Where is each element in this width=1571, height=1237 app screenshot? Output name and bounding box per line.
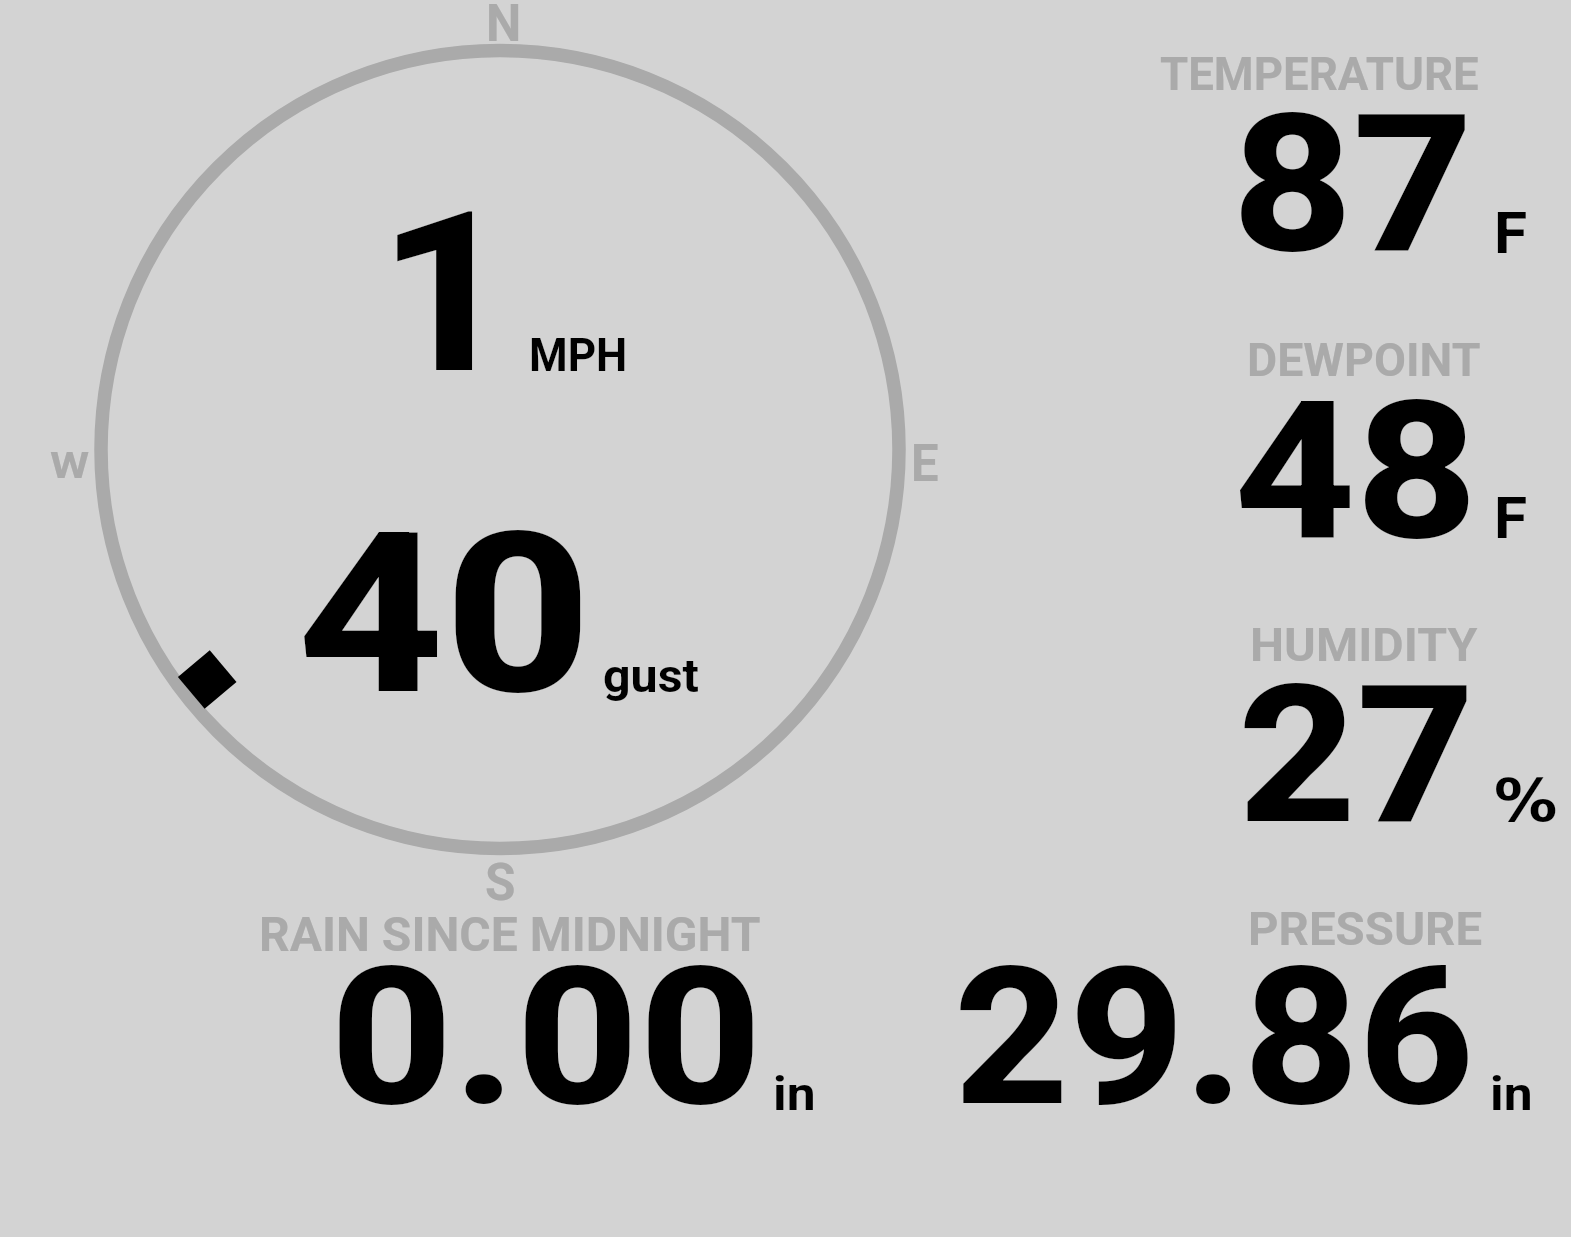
staticText: DEWPOINT [1247, 333, 1481, 387]
button[interactable]: Rain since midnight 0.00 inches [240, 900, 840, 1130]
staticText: HUMIDITY [1250, 618, 1478, 672]
staticText: % [1494, 767, 1558, 835]
staticText: 1 [378, 164, 515, 424]
staticText: F [1494, 199, 1527, 267]
staticText: N [486, 0, 521, 54]
button[interactable]: Dewpoint 48 degrees Fahrenheit [1140, 325, 1540, 555]
staticText: RAIN SINCE MIDNIGHT [259, 906, 761, 962]
staticText: 27 [1238, 643, 1475, 868]
button[interactable]: Wind direction compass, 1 MPH, gust 40 [101, 51, 899, 849]
staticText: F [1494, 484, 1527, 552]
staticText: in [1490, 1067, 1533, 1121]
staticText: in [773, 1067, 816, 1121]
button[interactable]: Pressure 29.86 inches [930, 900, 1490, 1130]
staticText: E [911, 434, 939, 494]
staticText: TEMPERATURE [1160, 47, 1479, 101]
staticText: 0.00 [330, 925, 763, 1150]
staticText: gust [603, 649, 700, 703]
staticText: S [485, 853, 516, 913]
staticText: PRESSURE [1248, 902, 1483, 956]
staticText: 48 [1234, 359, 1478, 584]
staticText: 40 [297, 485, 592, 745]
staticText: W [50, 444, 90, 487]
staticText: 87 [1232, 72, 1474, 297]
staticText: MPH [529, 328, 628, 382]
button[interactable]: Temperature 87 degrees Fahrenheit [1140, 40, 1540, 270]
staticText: 29.86 [954, 925, 1474, 1150]
button[interactable]: Humidity 27 percent [1140, 610, 1540, 840]
